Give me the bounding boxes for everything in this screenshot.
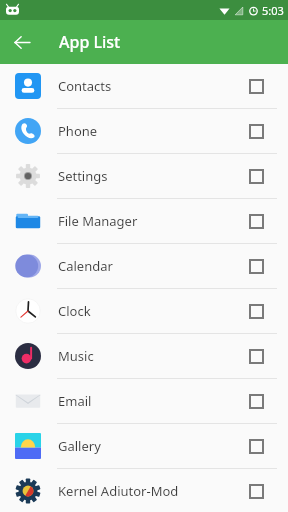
button[interactable]: Email [0, 379, 288, 423]
staticText: Settings [58, 167, 240, 185]
staticText: Kernel Adiutor-Mod [58, 482, 240, 500]
button[interactable]: Select Music [240, 340, 272, 372]
staticText: App List [59, 31, 121, 53]
staticText: Music [58, 347, 240, 365]
staticText: File Manager [58, 212, 240, 230]
staticText: Email [58, 392, 240, 410]
button[interactable]: Calendar [0, 244, 288, 288]
staticText: Calendar [58, 257, 240, 275]
button[interactable]: Music [0, 334, 288, 378]
button[interactable]: Gallery [0, 424, 288, 468]
button[interactable]: Select File Manager [240, 205, 272, 237]
button[interactable]: File Manager [0, 199, 288, 243]
staticText: 5:03 [262, 3, 284, 18]
staticText: Gallery [58, 437, 240, 455]
staticText: Clock [58, 302, 240, 320]
button[interactable]: Select Calendar [240, 250, 272, 282]
staticText: Phone [58, 122, 240, 140]
button[interactable]: Select Settings [240, 160, 272, 192]
button[interactable]: Select Email [240, 385, 272, 417]
button[interactable]: Select Phone [240, 115, 272, 147]
staticText: Contacts [58, 77, 240, 95]
button[interactable]: Select Gallery [240, 430, 272, 462]
button[interactable]: Kernel Adiutor-Mod [0, 469, 288, 512]
button[interactable]: Back [8, 28, 36, 56]
button[interactable]: Settings [0, 154, 288, 198]
button[interactable]: Select Kernel Adiutor-Mod [240, 475, 272, 507]
button[interactable]: Select Contacts [240, 70, 272, 102]
button[interactable]: Select Clock [240, 295, 272, 327]
button[interactable]: Phone [0, 109, 288, 153]
button[interactable]: Clock [0, 289, 288, 333]
button[interactable]: Contacts [0, 64, 288, 108]
